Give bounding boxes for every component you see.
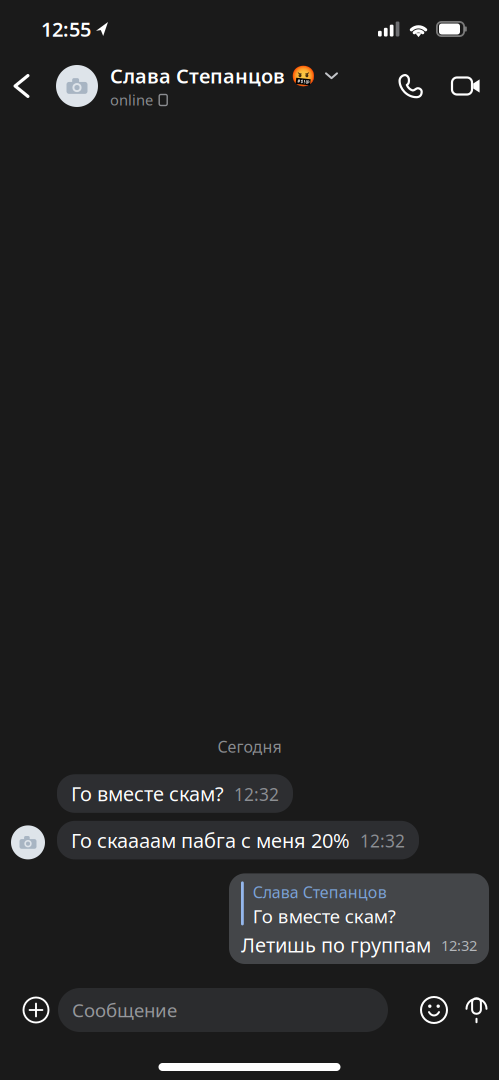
staticText: 12:32 [441, 935, 477, 955]
staticText: 12:55 [41, 16, 91, 42]
staticText: 🤬 [291, 64, 316, 87]
button[interactable]: Back [3, 58, 40, 114]
staticText: Слава Степанцов [110, 62, 285, 89]
button[interactable]: Call [379, 58, 442, 114]
staticText: Летишь по группам [241, 931, 431, 958]
staticText: Сообщение [72, 998, 177, 1022]
staticText: online [110, 90, 153, 109]
button[interactable]: Attach [14, 988, 58, 1032]
staticText: Го вместе скам? [253, 904, 396, 928]
staticText: Сегодня [217, 736, 281, 757]
staticText: Го вместе скам? [71, 780, 224, 807]
button[interactable]: Emoji [412, 988, 456, 1032]
button[interactable]: Сообщение [58, 988, 388, 1032]
staticText: Го скааaам пабга с меня 20% [71, 827, 350, 853]
staticText: 12:32 [360, 829, 405, 852]
staticText: 12:32 [234, 783, 279, 806]
staticText: Слава Степанцов [253, 881, 387, 903]
button[interactable]: Voice message [456, 988, 497, 1032]
button[interactable]: Video call [442, 58, 490, 114]
